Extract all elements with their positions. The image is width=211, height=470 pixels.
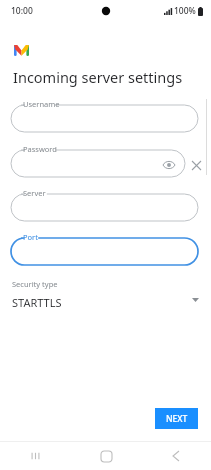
staticText: Server [23, 188, 46, 198]
staticText: 10:00 [11, 5, 33, 17]
button[interactable]: Home [71, 442, 141, 470]
button[interactable]: Show password [161, 157, 177, 173]
staticText: 100% [174, 5, 196, 17]
staticText: NEXT [166, 413, 188, 425]
button[interactable]: Password [11, 145, 185, 178]
button[interactable]: Recent apps [0, 442, 71, 470]
button[interactable]: Port [11, 233, 198, 266]
staticText: Security type [12, 279, 58, 289]
button[interactable]: Server [11, 189, 198, 222]
button[interactable]: Back [141, 442, 211, 470]
staticText: Port [23, 232, 38, 242]
button[interactable]: Security type [12, 279, 199, 315]
staticText: Password [23, 144, 57, 154]
staticText: STARTTLS [12, 295, 62, 310]
button[interactable]: NEXT [155, 408, 198, 429]
staticText: Incoming server settings [13, 67, 183, 87]
button[interactable]: Username [11, 100, 198, 133]
button[interactable]: Clear [187, 156, 205, 174]
staticText: Username [23, 99, 60, 109]
